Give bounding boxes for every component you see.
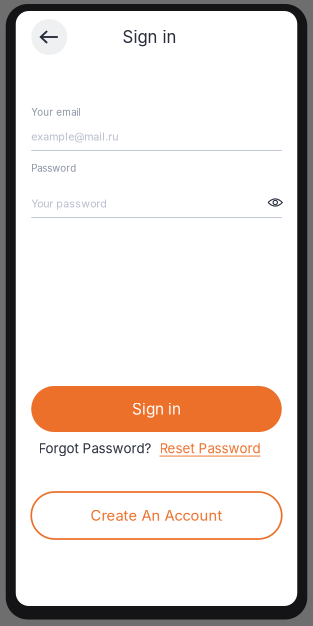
staticText: Reset Password <box>159 440 260 456</box>
staticText: Sign in <box>132 400 181 418</box>
staticText: Sign in <box>122 27 176 47</box>
button[interactable]: Show password <box>264 198 282 211</box>
button[interactable]: Back <box>31 19 67 55</box>
staticText: example@mail.ru <box>31 130 118 143</box>
button[interactable]: Sign in <box>31 386 282 432</box>
button[interactable]: Reset Password <box>159 440 260 456</box>
button[interactable]: Create An Account <box>31 492 282 539</box>
staticText: Forgot Password? <box>38 440 151 456</box>
staticText: Your email <box>31 106 80 118</box>
staticText: Password <box>31 162 76 174</box>
staticText: Your password <box>31 197 107 210</box>
staticText: Create An Account <box>90 507 222 524</box>
